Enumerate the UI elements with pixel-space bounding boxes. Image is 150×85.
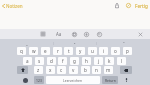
staticText: n	[95, 67, 98, 73]
button[interactable]: Notizen	[0, 1, 27, 11]
staticText: o	[114, 48, 117, 54]
button[interactable]: e	[41, 47, 50, 55]
staticText: j	[98, 58, 100, 64]
staticText: f	[62, 58, 64, 64]
button[interactable]: n	[92, 66, 101, 74]
button[interactable]: b	[81, 66, 90, 74]
staticText: m	[106, 67, 111, 73]
button[interactable]: •	[54, 39, 96, 47]
button[interactable]: Leerzeichen	[46, 76, 100, 84]
staticText: c	[60, 67, 63, 73]
staticText: p	[126, 48, 129, 54]
staticText: k	[108, 58, 111, 64]
button[interactable]: j	[94, 57, 103, 65]
staticText: •	[74, 41, 76, 46]
button[interactable]: c	[57, 66, 66, 74]
button[interactable]: Share	[112, 0, 121, 11]
button[interactable]: y	[76, 47, 85, 55]
button[interactable]: p	[123, 47, 132, 55]
button[interactable]: t	[64, 47, 73, 55]
staticText: g	[73, 58, 76, 64]
staticText: l	[121, 58, 123, 64]
button[interactable]: Attachment	[95, 29, 103, 39]
staticText: “	[123, 41, 125, 46]
button[interactable]: Return	[102, 76, 118, 84]
button[interactable]: Aa	[55, 29, 63, 39]
staticText: 123	[36, 78, 42, 83]
staticText: h	[85, 58, 88, 64]
button[interactable]: a	[23, 57, 32, 65]
button[interactable]: m	[104, 66, 113, 74]
button[interactable]: h	[82, 57, 91, 65]
button[interactable]: 123	[34, 76, 44, 84]
button[interactable]: Hide keyboard	[136, 29, 144, 39]
button[interactable]: o	[111, 47, 120, 55]
button[interactable]: i	[99, 47, 108, 55]
staticText: Return	[105, 78, 116, 83]
button[interactable]: Dictate	[122, 76, 130, 84]
staticText: w	[32, 48, 36, 54]
button[interactable]: Fertig	[133, 3, 150, 9]
staticText: z	[37, 67, 40, 73]
button[interactable]: Markup	[82, 29, 90, 39]
staticText: Aa	[56, 31, 62, 37]
button[interactable]: q	[17, 47, 26, 55]
button[interactable]: k	[105, 57, 114, 65]
staticText: „	[26, 41, 28, 46]
button[interactable]: d	[47, 57, 56, 65]
button[interactable]: Camera	[70, 29, 78, 39]
button[interactable]: u	[88, 47, 97, 55]
staticText: q	[20, 48, 23, 54]
button[interactable]: New note	[124, 0, 133, 11]
staticText: Notizen	[6, 3, 23, 9]
button[interactable]: w	[29, 47, 38, 55]
button[interactable]: Shift	[17, 66, 28, 74]
staticText: Leerzeichen	[63, 78, 83, 83]
staticText: t	[68, 48, 70, 54]
staticText: b	[84, 67, 87, 73]
button[interactable]: r	[53, 47, 62, 55]
button[interactable]: Backspace	[120, 66, 132, 74]
staticText: s	[38, 58, 41, 64]
staticText: d	[50, 58, 53, 64]
staticText: r	[57, 48, 59, 54]
staticText: e	[44, 48, 47, 54]
staticText: x	[49, 67, 52, 73]
button[interactable]: l	[117, 57, 126, 65]
staticText: u	[91, 48, 94, 54]
button[interactable]: s	[35, 57, 44, 65]
button[interactable]: f	[58, 57, 67, 65]
button[interactable]: g	[70, 57, 79, 65]
button[interactable]: x	[46, 66, 55, 74]
staticText: i	[103, 48, 105, 54]
button[interactable]: Emoji	[21, 76, 29, 84]
button[interactable]: Table	[39, 29, 47, 39]
staticText: a	[26, 58, 29, 64]
button[interactable]: z	[34, 66, 43, 74]
staticText: v	[72, 67, 75, 73]
button[interactable]: v	[69, 66, 78, 74]
staticText: y	[79, 48, 82, 54]
